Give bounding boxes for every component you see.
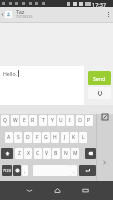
staticText: , bbox=[24, 168, 26, 174]
staticText: D bbox=[26, 134, 30, 141]
button[interactable]: B bbox=[52, 148, 60, 159]
button[interactable]: N bbox=[62, 148, 70, 159]
button[interactable]: L bbox=[79, 132, 87, 143]
button[interactable]: T bbox=[39, 115, 47, 126]
button[interactable]: V bbox=[43, 148, 51, 159]
staticText: U bbox=[59, 117, 63, 124]
staticText: X bbox=[27, 150, 30, 157]
staticText: B bbox=[54, 150, 58, 157]
button[interactable]: Recent apps bbox=[79, 181, 91, 200]
staticText: Z bbox=[18, 150, 21, 157]
staticText: R bbox=[31, 117, 35, 124]
staticText: Hello. bbox=[3, 70, 17, 77]
staticText: S bbox=[17, 134, 20, 141]
staticText: T bbox=[42, 117, 45, 124]
button[interactable]: Expand keyboard bbox=[99, 111, 110, 122]
button[interactable]: E bbox=[20, 115, 28, 126]
button[interactable]: Backspace bbox=[85, 148, 96, 159]
button[interactable]: M bbox=[71, 148, 79, 159]
button[interactable]: Send bbox=[88, 71, 111, 85]
button[interactable]: P bbox=[85, 115, 93, 126]
button[interactable]: ?123 bbox=[2, 165, 12, 176]
button[interactable]: R bbox=[29, 115, 37, 126]
button[interactable]: Hide keyboard bbox=[23, 181, 35, 200]
button[interactable]: S bbox=[14, 132, 22, 143]
staticText: O bbox=[78, 117, 82, 124]
button[interactable]: . bbox=[70, 165, 77, 176]
button[interactable]: Shift bbox=[1, 148, 13, 159]
button[interactable]: G bbox=[42, 132, 50, 143]
staticText: 73728326 bbox=[16, 14, 33, 19]
button[interactable]: H bbox=[51, 132, 59, 143]
staticText: L bbox=[82, 134, 85, 141]
button[interactable]: Move keyboard right bbox=[99, 157, 110, 168]
button[interactable]: A bbox=[5, 132, 13, 143]
staticText: H bbox=[53, 134, 57, 141]
staticText: W bbox=[13, 117, 18, 124]
staticText: P bbox=[87, 117, 91, 124]
staticText: Q bbox=[3, 117, 7, 124]
button[interactable]: , bbox=[22, 165, 28, 176]
button[interactable]: Z bbox=[15, 148, 23, 159]
button[interactable]: Q bbox=[1, 115, 9, 126]
button[interactable]: Emoji bbox=[13, 165, 21, 176]
staticText: E bbox=[23, 117, 26, 124]
button[interactable]: C bbox=[34, 148, 42, 159]
staticText: ?123 bbox=[3, 168, 11, 173]
button[interactable]: More options bbox=[103, 7, 113, 22]
staticText: J bbox=[64, 134, 66, 141]
button[interactable]: J bbox=[61, 132, 69, 143]
staticText: Taz bbox=[16, 8, 25, 16]
button[interactable]: K bbox=[70, 132, 78, 143]
button[interactable]: X bbox=[24, 148, 32, 159]
staticText: I bbox=[69, 117, 71, 124]
button[interactable]: O bbox=[76, 115, 84, 126]
staticText: M bbox=[73, 150, 78, 157]
button[interactable]: Enter bbox=[79, 165, 96, 176]
staticText: F bbox=[36, 134, 39, 141]
staticText: C bbox=[36, 150, 40, 157]
staticText: A bbox=[7, 134, 11, 141]
button[interactable]: U bbox=[57, 115, 65, 126]
button[interactable]: F bbox=[33, 132, 41, 143]
staticText: V bbox=[45, 150, 49, 157]
button[interactable]: D bbox=[24, 132, 32, 143]
staticText: G bbox=[44, 134, 48, 141]
staticText: . bbox=[73, 168, 75, 174]
staticText: Y bbox=[51, 117, 54, 124]
staticText: N bbox=[64, 150, 68, 157]
button[interactable]: Home bbox=[51, 181, 63, 200]
staticText: K bbox=[72, 134, 76, 141]
button[interactable]: W bbox=[11, 115, 19, 126]
staticText: 17:37 bbox=[92, 1, 107, 8]
button[interactable]: Y bbox=[48, 115, 56, 126]
button[interactable]: Back bbox=[0, 7, 5, 22]
staticText: Send bbox=[93, 75, 106, 82]
button[interactable]: I bbox=[66, 115, 74, 126]
button[interactable]: Attach bbox=[88, 87, 111, 99]
